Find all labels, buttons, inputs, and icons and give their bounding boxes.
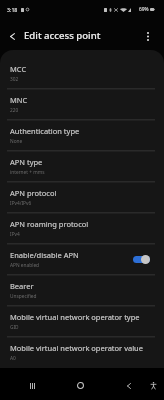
staticText: MCC	[10, 64, 27, 74]
staticText: IPv4	[10, 231, 20, 238]
staticText: Bearer	[10, 281, 34, 291]
staticText: IPv4/IPv6	[10, 200, 32, 207]
button[interactable]: APN type	[0, 152, 164, 181]
button[interactable]: Home	[70, 375, 91, 396]
button[interactable]: MNC	[0, 90, 164, 119]
button[interactable]: APN protocol	[0, 183, 164, 212]
button[interactable]: Authentication type	[0, 121, 164, 150]
staticText: A0	[10, 355, 16, 362]
staticText: 3:18	[7, 6, 18, 13]
staticText: Enable/disable APN	[10, 250, 79, 260]
staticText: APN roaming protocol	[10, 219, 89, 229]
button[interactable]: Mobile virtual network operator value	[0, 338, 164, 367]
staticText: Unspecified	[10, 293, 37, 300]
button[interactable]: Recent apps	[22, 375, 43, 396]
staticText: APN protocol	[10, 188, 57, 198]
button[interactable]: Enable/disable APN	[0, 245, 164, 274]
button[interactable]: Bearer	[0, 276, 164, 305]
staticText: GID	[10, 324, 19, 331]
staticText: Edit access point	[24, 29, 101, 42]
button[interactable]: MCC	[0, 59, 164, 88]
button[interactable]: Mobile virtual network operator type	[0, 307, 164, 336]
staticText: 220	[10, 107, 19, 114]
staticText: APN enabled	[10, 262, 40, 269]
button[interactable]: Accessibility	[143, 375, 164, 396]
button[interactable]: More options	[139, 21, 157, 47]
staticText: Mobile virtual network operator type	[10, 312, 140, 322]
staticText: 302	[10, 76, 19, 83]
staticText: internet + mms	[10, 169, 45, 176]
staticText: Authentication type	[10, 126, 80, 136]
staticText: APN type	[10, 157, 43, 167]
staticText: Mobile virtual network operator value	[10, 343, 143, 353]
button[interactable]: Navigate up	[2, 21, 22, 47]
staticText: None	[10, 138, 23, 145]
button[interactable]: APN roaming protocol	[0, 214, 164, 243]
staticText: 69%	[139, 6, 149, 13]
button[interactable]: Back	[118, 375, 139, 396]
staticText: MNC	[10, 95, 28, 105]
